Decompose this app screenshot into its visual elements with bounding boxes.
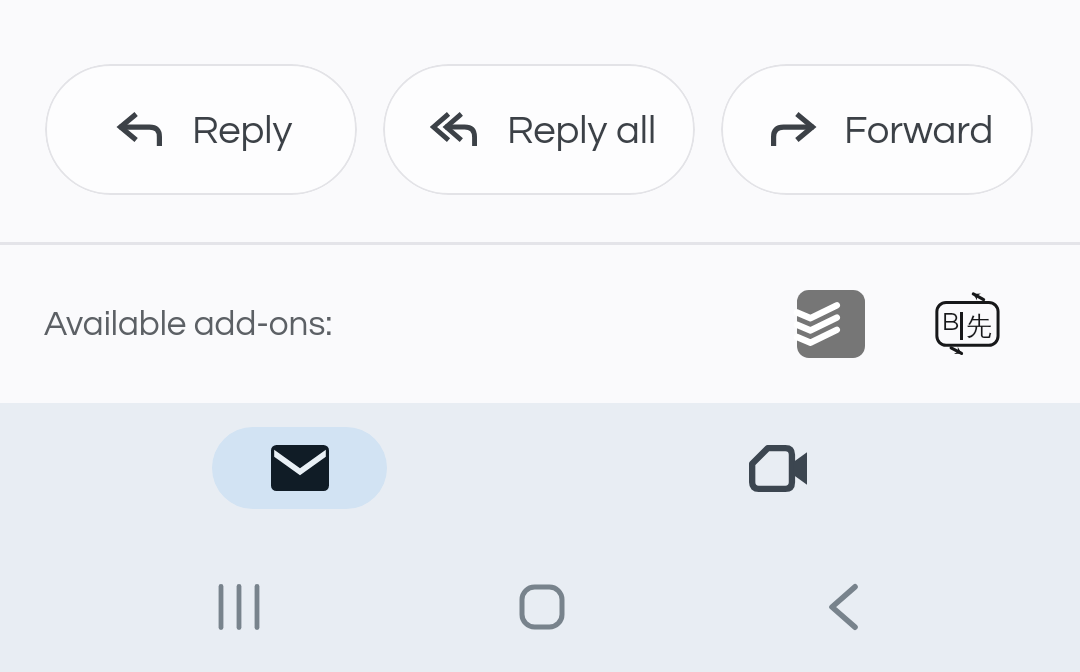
button[interactable]: Mail — [0, 403, 540, 531]
button[interactable]: Reply — [45, 64, 357, 195]
staticText: B — [942, 309, 960, 336]
button[interactable]: Home — [508, 584, 576, 630]
button[interactable]: Meet — [540, 403, 1080, 531]
button[interactable]: Todoist add-on — [797, 290, 865, 358]
staticText: 先 — [966, 310, 992, 343]
button[interactable]: Translate add-on — [934, 288, 1002, 356]
staticText: Available add-ons: — [44, 306, 333, 342]
button[interactable]: Forward — [721, 64, 1033, 195]
staticText: Reply all — [507, 110, 657, 151]
button[interactable]: Back — [810, 584, 878, 630]
staticText: Reply — [192, 110, 293, 151]
button[interactable]: Recents — [204, 584, 274, 630]
staticText: Forward — [844, 110, 994, 151]
button[interactable]: Reply all — [383, 64, 695, 195]
